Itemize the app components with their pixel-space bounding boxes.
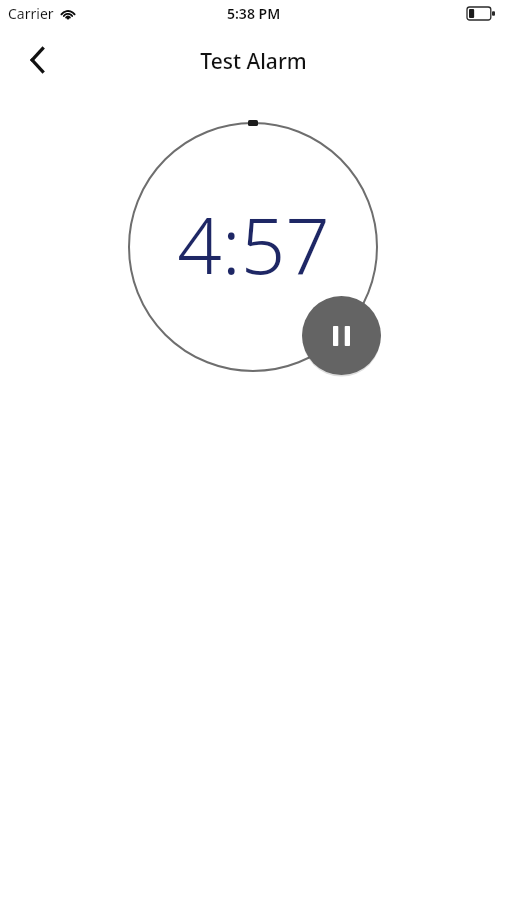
button[interactable]: Pause [302, 296, 381, 375]
staticText: Test Alarm [200, 47, 307, 76]
staticText: 5:38 PM [227, 4, 281, 23]
button[interactable]: Back [14, 38, 60, 82]
staticText: Carrier [8, 4, 54, 23]
staticText: 4:57 [177, 191, 330, 297]
